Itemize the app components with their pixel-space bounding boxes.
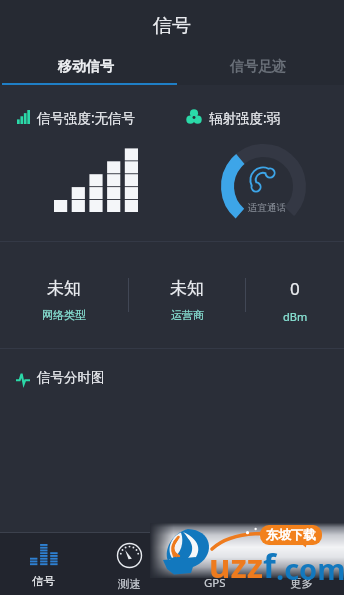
staticText: 信号分时图: [37, 369, 105, 386]
button[interactable]: 移动信号: [0, 49, 172, 85]
staticText: dBm: [283, 309, 308, 324]
button[interactable]: 测速: [86, 533, 172, 595]
other: GPS: [202, 541, 228, 567]
staticText: 0: [290, 277, 300, 300]
staticText: 适宜通话: [248, 202, 286, 214]
staticText: uzz: [209, 543, 263, 588]
staticText: 运营商: [171, 308, 204, 322]
staticText: 网络类型: [42, 308, 86, 322]
staticText: f: [263, 543, 276, 588]
staticText: .com: [276, 549, 344, 588]
staticText: 信号强度:无信号: [37, 109, 136, 127]
staticText: 辐射强度:弱: [209, 109, 281, 127]
staticText: GPS: [204, 575, 226, 591]
staticText: 未知: [170, 278, 204, 299]
button[interactable]: GPS: [172, 533, 258, 595]
other: 信号: [30, 544, 57, 566]
button[interactable]: 信号足迹: [172, 49, 344, 85]
button[interactable]: 更多: [258, 533, 344, 595]
staticText: 移动信号: [58, 58, 114, 76]
staticText: 东坡下载: [266, 527, 316, 543]
button[interactable]: 未知: [0, 242, 128, 348]
staticText: 信号: [153, 14, 191, 38]
button[interactable]: 0: [246, 242, 344, 348]
other: 更多: [288, 542, 314, 568]
button[interactable]: 信号: [0, 533, 86, 595]
staticText: 信号足迹: [230, 58, 286, 76]
staticText: 更多: [290, 576, 313, 590]
staticText: 未知: [47, 278, 81, 299]
staticText: 信号: [32, 574, 55, 588]
button[interactable]: 未知: [129, 242, 245, 348]
other: 测速: [116, 542, 143, 569]
staticText: 测速: [118, 577, 141, 591]
